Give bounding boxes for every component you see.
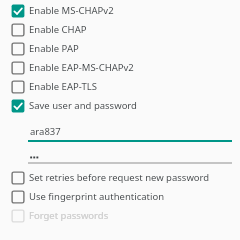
staticText: ara837 [30, 125, 61, 138]
staticText: Set retries before request new password [29, 171, 210, 184]
button: Forget passwords [0, 206, 240, 225]
button[interactable]: Enable CHAP [0, 20, 240, 39]
button[interactable]: Save user and password [0, 96, 240, 115]
staticText: Enable EAP-MS-CHAPv2 [29, 61, 134, 74]
staticText: Forget passwords [29, 209, 109, 222]
button[interactable]: Enable PAP [0, 39, 240, 58]
button[interactable]: Use fingerprint authentication [0, 187, 240, 206]
staticText: Enable EAP-TLS [29, 80, 97, 93]
button[interactable]: Enable MS-CHAPv2 [0, 1, 240, 20]
button[interactable]: Enable EAP-TLS [0, 77, 240, 96]
staticText: Enable PAP [29, 42, 79, 55]
staticText: Save user and password [29, 99, 137, 112]
button[interactable]: Set retries before request new password [0, 168, 240, 187]
button[interactable]: Password [28, 149, 232, 162]
staticText: Use fingerprint authentication [29, 190, 165, 203]
button[interactable]: ara837 [28, 122, 232, 140]
button[interactable]: Enable EAP-MS-CHAPv2 [0, 58, 240, 77]
staticText: Enable MS-CHAPv2 [29, 4, 114, 17]
staticText: Enable CHAP [29, 23, 87, 36]
